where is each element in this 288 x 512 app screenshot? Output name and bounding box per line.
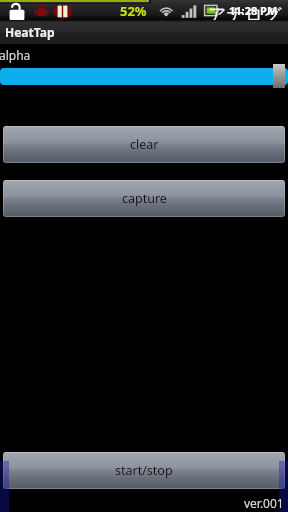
- button[interactable]: clear: [3, 126, 285, 163]
- staticText: 52%: [120, 2, 147, 20]
- staticText: clear: [130, 136, 159, 153]
- button[interactable]: start/stop: [3, 452, 285, 489]
- staticText: 11:28 PM: [229, 3, 278, 18]
- staticText: capture: [122, 190, 167, 207]
- button[interactable]: alpha slider: [0, 68, 288, 85]
- staticText: alpha: [0, 47, 31, 63]
- staticText: アナログ: [208, 4, 282, 27]
- staticText: start/stop: [115, 462, 173, 479]
- staticText: ver.001: [244, 495, 284, 511]
- staticText: HeatTap: [5, 24, 55, 40]
- button[interactable]: capture: [3, 180, 285, 217]
